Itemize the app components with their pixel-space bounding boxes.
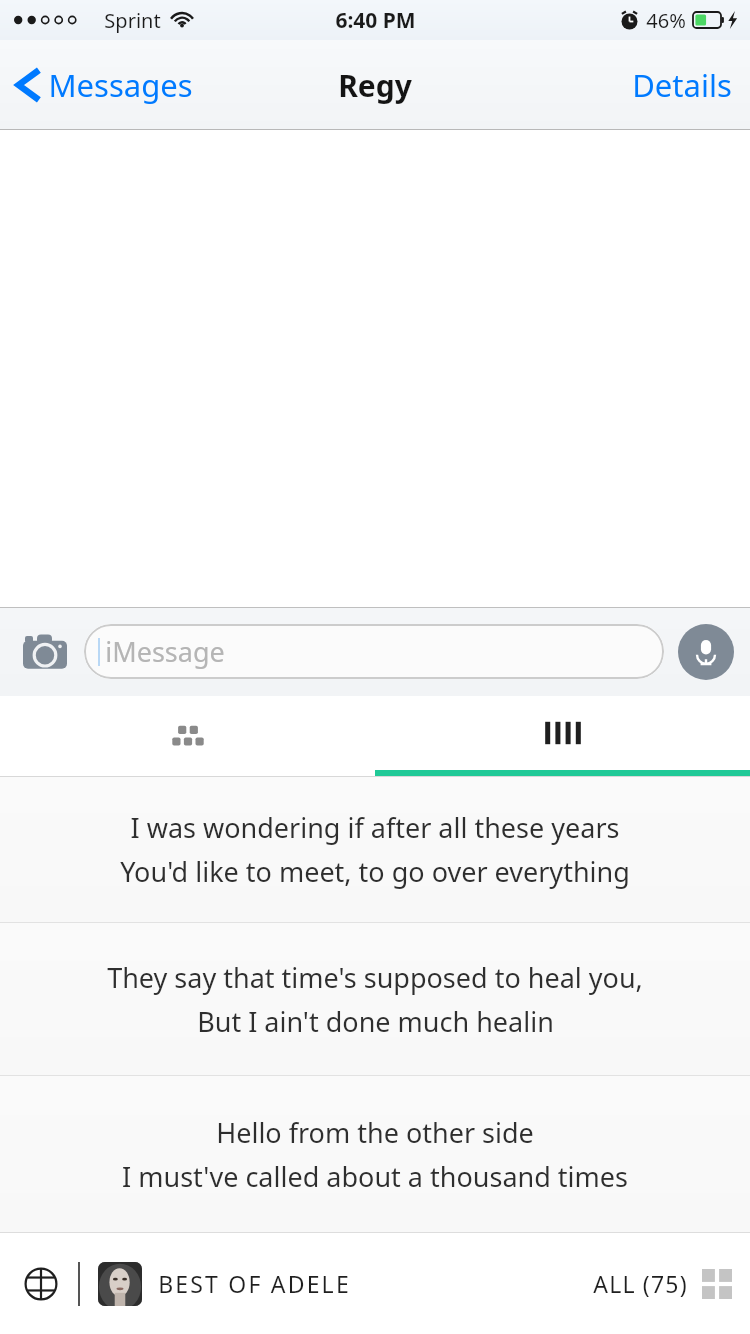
button[interactable]: iMessage [84, 624, 664, 679]
staticText: I was wondering if after all these years [130, 809, 620, 846]
button[interactable]: Lyrics [375, 696, 750, 770]
staticText: Messages [48, 64, 193, 106]
staticText: ALL (75) [593, 1268, 688, 1299]
staticText: iMessage [105, 633, 225, 670]
button[interactable]: Album art: Best of Adele [98, 1262, 142, 1306]
button[interactable]: ALL (75) [593, 1268, 732, 1299]
button[interactable]: Record audio message [678, 624, 734, 680]
staticText: Hello from the other side [216, 1114, 534, 1151]
button[interactable]: Camera [16, 626, 74, 678]
button[interactable]: Messages [0, 40, 207, 130]
staticText: Details [632, 64, 732, 106]
staticText: 6:40 PM [335, 6, 416, 35]
staticText: Regy [338, 65, 412, 106]
staticText: Sprint [104, 7, 161, 34]
staticText: You'd like to meet, to go over everythin… [120, 853, 630, 890]
staticText: 46% [646, 7, 686, 34]
staticText: But I ain't done much healin [197, 1003, 554, 1040]
staticText: BEST OF ADELE [158, 1268, 351, 1299]
button[interactable]: Language [18, 1261, 64, 1307]
button[interactable]: Apps [0, 696, 375, 770]
button[interactable]: Hello from the other side [0, 1076, 750, 1232]
button[interactable]: I was wondering if after all these years [0, 777, 750, 922]
staticText: They say that time's supposed to heal yo… [107, 959, 643, 996]
button[interactable]: They say that time's supposed to heal yo… [0, 923, 750, 1075]
staticText: I must've called about a thousand times [122, 1158, 628, 1195]
button[interactable]: Details [614, 40, 750, 130]
